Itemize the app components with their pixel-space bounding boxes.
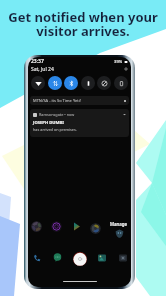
button[interactable]: Quick setting [97, 76, 111, 90]
button[interactable]: Gallery app [96, 252, 107, 263]
button[interactable]: Chrome [73, 252, 87, 266]
staticText: Get notified when your visitor arrives. [4, 8, 162, 39]
staticText: Ramsonsgate • now [39, 112, 75, 117]
button[interactable]: Gallery [31, 221, 42, 232]
staticText: 23:37 [31, 58, 44, 65]
button[interactable]: Quick setting [31, 76, 45, 90]
button[interactable]: Maps [90, 223, 101, 234]
button[interactable]: Phone [31, 252, 42, 263]
staticText: JOSEPH DUMBI [33, 120, 64, 126]
staticText: MTN/SA - its So Time Yeti! [33, 98, 81, 103]
button[interactable]: Messages [52, 252, 63, 263]
button[interactable]: Play Store [71, 221, 82, 232]
button[interactable]: Manage [114, 228, 125, 239]
button[interactable]: Ramsonsgate • now [30, 109, 129, 137]
button[interactable]: Quick setting [48, 76, 62, 90]
staticText: has arrived on premises. [33, 127, 77, 132]
button[interactable]: Quick setting [64, 76, 78, 90]
button[interactable]: MTN/SA - its So Time Yeti! [30, 96, 129, 105]
staticText: Sat, Jul 24 [31, 66, 54, 72]
button[interactable]: Camera [117, 252, 128, 263]
button[interactable]: Quick setting [81, 76, 95, 90]
staticText: Manage [110, 221, 128, 227]
button[interactable]: Assistant [51, 221, 62, 232]
button[interactable]: Quick setting [114, 76, 128, 90]
other: Settings [124, 67, 128, 71]
staticText: 39% [114, 59, 123, 65]
